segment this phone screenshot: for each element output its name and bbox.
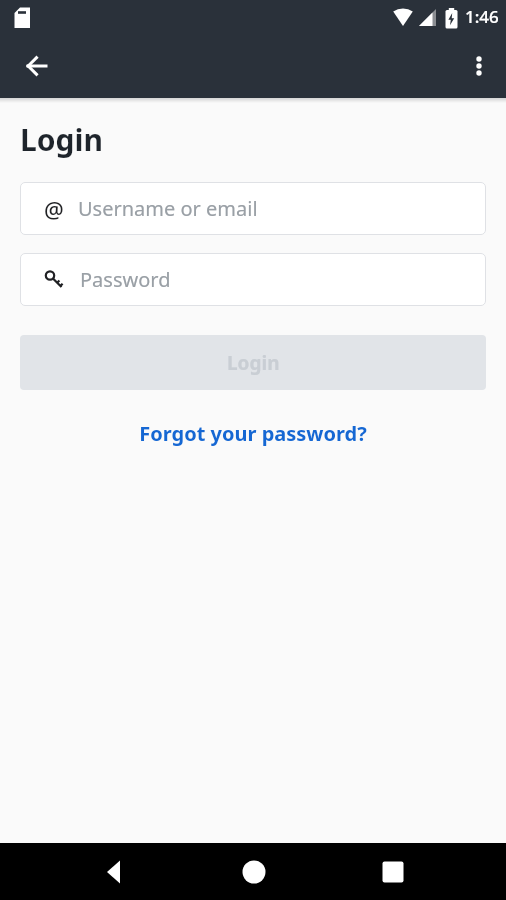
button[interactable] <box>45 843 184 900</box>
staticText: Login <box>227 350 280 376</box>
staticText: @ <box>44 194 64 224</box>
button[interactable]: Password <box>20 253 486 306</box>
button[interactable]: Forgot your password? <box>133 414 373 453</box>
button[interactable] <box>9 38 65 94</box>
button[interactable] <box>454 41 504 91</box>
staticText: Login <box>20 119 103 160</box>
staticText: Forgot your password? <box>139 420 367 447</box>
button[interactable] <box>323 843 462 900</box>
staticText: Password <box>80 266 171 293</box>
button[interactable] <box>184 843 323 900</box>
staticText: 1:46 <box>465 5 499 28</box>
button[interactable]: @ <box>20 182 486 235</box>
staticText: Username or email <box>78 195 258 222</box>
